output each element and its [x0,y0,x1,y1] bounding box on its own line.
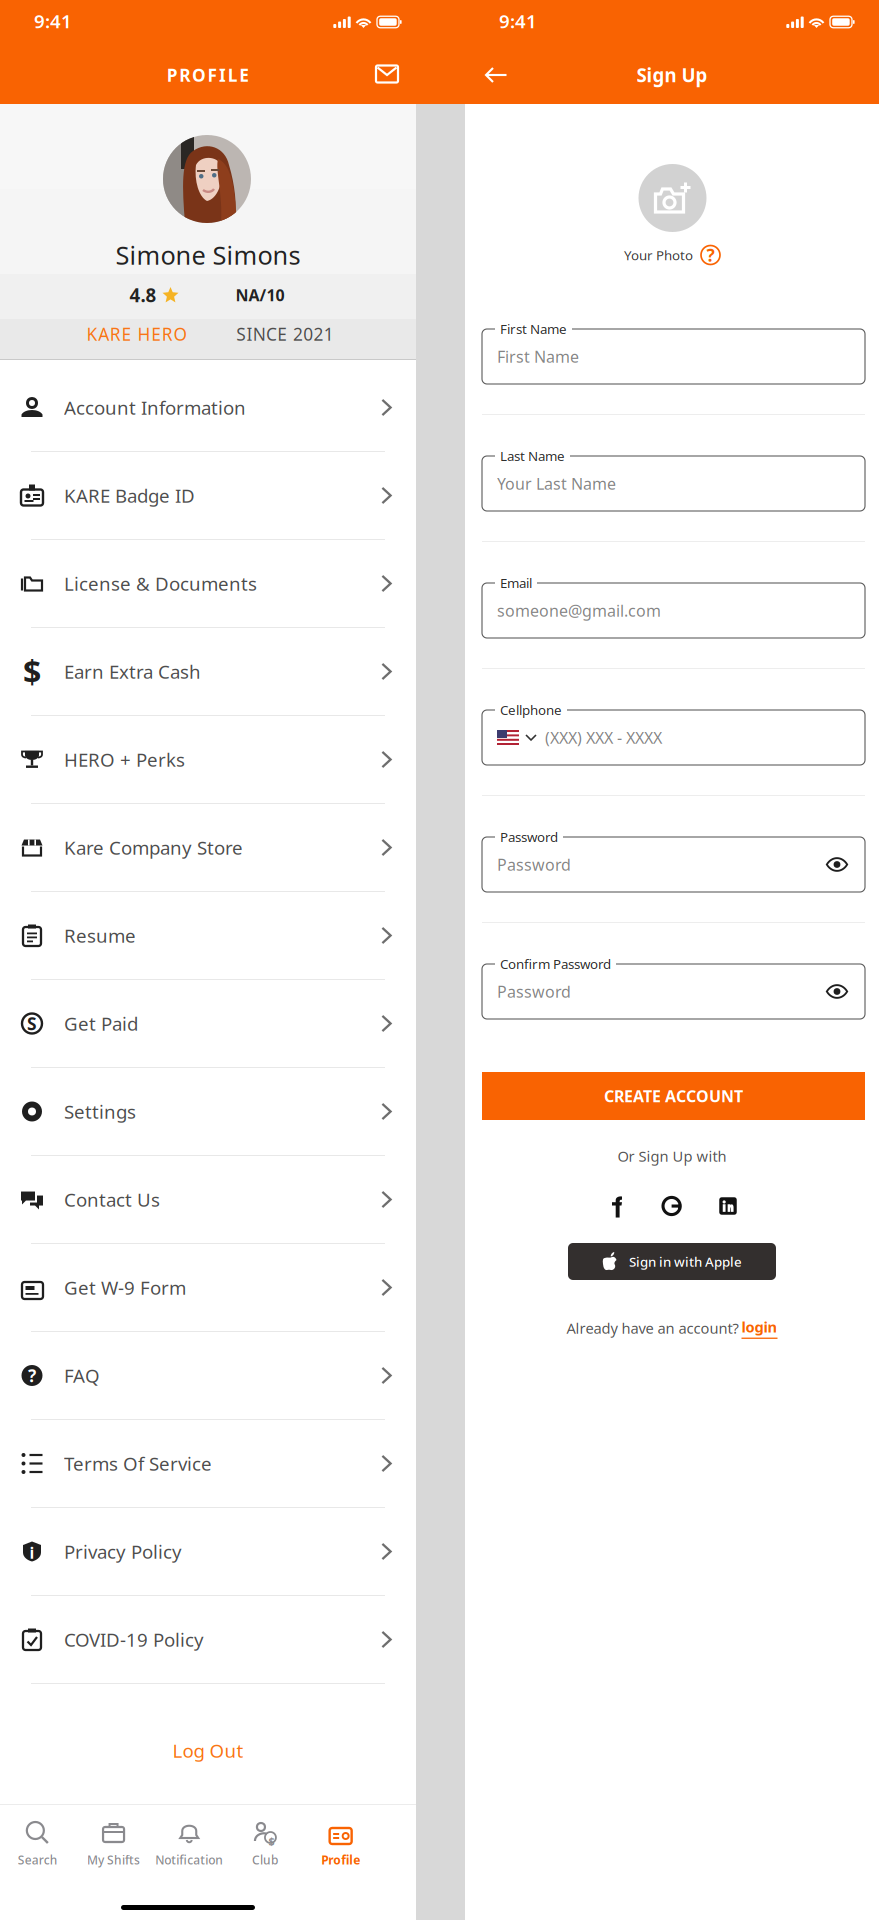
button[interactable]: Show password [826,857,848,871]
button[interactable]: $ [227,1805,303,1869]
button[interactable]: Sign up with Facebook [597,1190,637,1224]
staticText: Get W-9 Form [64,1275,186,1300]
staticText: 9:41 [499,9,537,33]
staticText: $ [23,650,41,693]
staticText: Your Last Name [497,473,616,494]
button[interactable]: Terms Of Service [0,1420,416,1508]
staticText: (XXX) XXX - XXXX [545,727,662,748]
button[interactable]: CREATE ACCOUNT [482,1072,865,1120]
staticText: Contact Us [64,1187,160,1212]
button[interactable]: Messages [365,57,409,91]
staticText: First Name [500,320,567,338]
button[interactable]: Contact Us [0,1156,416,1244]
button[interactable]: Back [474,58,518,92]
button[interactable]: Sign up with LinkedIn [708,1189,748,1223]
staticText: Resume [64,923,136,948]
staticText: Account Information [64,395,246,420]
button[interactable]: Already have an account? [465,1315,879,1341]
staticText: PROFILE [167,63,249,86]
button[interactable]: Notification [151,1805,227,1869]
button[interactable]: Kare Company Store [0,804,416,892]
button[interactable]: ? [0,1332,416,1420]
button[interactable]: Search [0,1805,76,1869]
staticText: i [29,1542,34,1563]
staticText: Profile [321,1852,360,1868]
button[interactable]: i [0,1508,416,1596]
staticText: First Name [497,346,579,367]
button[interactable]: Sign up with Google [652,1189,692,1223]
staticText: Kare Company Store [64,835,243,860]
staticText: Cellphone [500,701,562,719]
staticText: ? [706,243,714,266]
staticText: Already have an account? [566,1318,738,1338]
staticText: CREATE ACCOUNT [604,1085,743,1107]
staticText: SINCE 2021 [236,322,334,345]
staticText: My Shifts [87,1852,140,1868]
button[interactable]: Show password [826,984,848,998]
staticText: Earn Extra Cash [64,659,201,684]
staticText: Terms Of Service [64,1451,212,1476]
button[interactable]: Resume [0,892,416,980]
staticText: ? [28,1364,36,1387]
staticText: COVID-19 Policy [64,1627,204,1652]
staticText: Password [497,981,571,1002]
staticText: KARE Badge ID [64,483,195,508]
staticText: Password [500,828,558,846]
button[interactable]: Get W-9 Form [0,1244,416,1332]
staticText: someone@gmail.com [497,600,661,621]
button[interactable]: Settings [0,1068,416,1156]
button[interactable]: Photo help [701,245,720,264]
staticText: Simone Simons [115,238,300,272]
button[interactable]: COVID-19 Policy [0,1596,416,1684]
staticText: Club [252,1852,278,1868]
staticText: Log Out [172,1738,243,1763]
staticText: Search [18,1852,58,1868]
staticText: Sign Up [636,63,707,87]
staticText: Email [500,574,532,592]
staticText: KARE HERO [87,322,187,345]
button[interactable]: Log Out [0,1684,416,1804]
staticText: Sign in with Apple [629,1253,742,1270]
staticText: NA/10 [235,284,284,306]
staticText: Privacy Policy [64,1539,182,1564]
staticText: Password [497,854,571,875]
button[interactable]: Sign in with Apple [568,1243,776,1280]
staticText: Settings [64,1099,136,1124]
staticText: Or Sign Up with [617,1146,726,1166]
staticText: Your Photo [624,246,693,264]
button[interactable]: My Shifts [76,1805,151,1869]
button[interactable]: Profile [303,1805,378,1869]
staticText: login [741,1317,777,1337]
staticText: 9:41 [34,9,72,33]
staticText: FAQ [64,1363,100,1388]
staticText: S [27,1012,37,1035]
button[interactable]: Account Information [0,364,416,452]
staticText: $ [268,1834,274,1848]
button[interactable]: KARE Badge ID [0,452,416,540]
button[interactable]: S [0,980,416,1068]
staticText: Last Name [500,447,565,465]
staticText: Get Paid [64,1011,138,1036]
staticText: HERO + Perks [64,747,185,772]
button[interactable]: Add your photo [638,164,706,232]
button[interactable]: HERO + Perks [0,716,416,804]
staticText: License & Documents [64,571,257,596]
staticText: 4.8 [129,283,156,307]
button[interactable]: License & Documents [0,540,416,628]
button[interactable]: PROFILE [128,63,288,87]
button[interactable]: $ [0,628,416,716]
staticText: Confirm Password [500,955,611,973]
staticText: Notification [155,1852,223,1868]
